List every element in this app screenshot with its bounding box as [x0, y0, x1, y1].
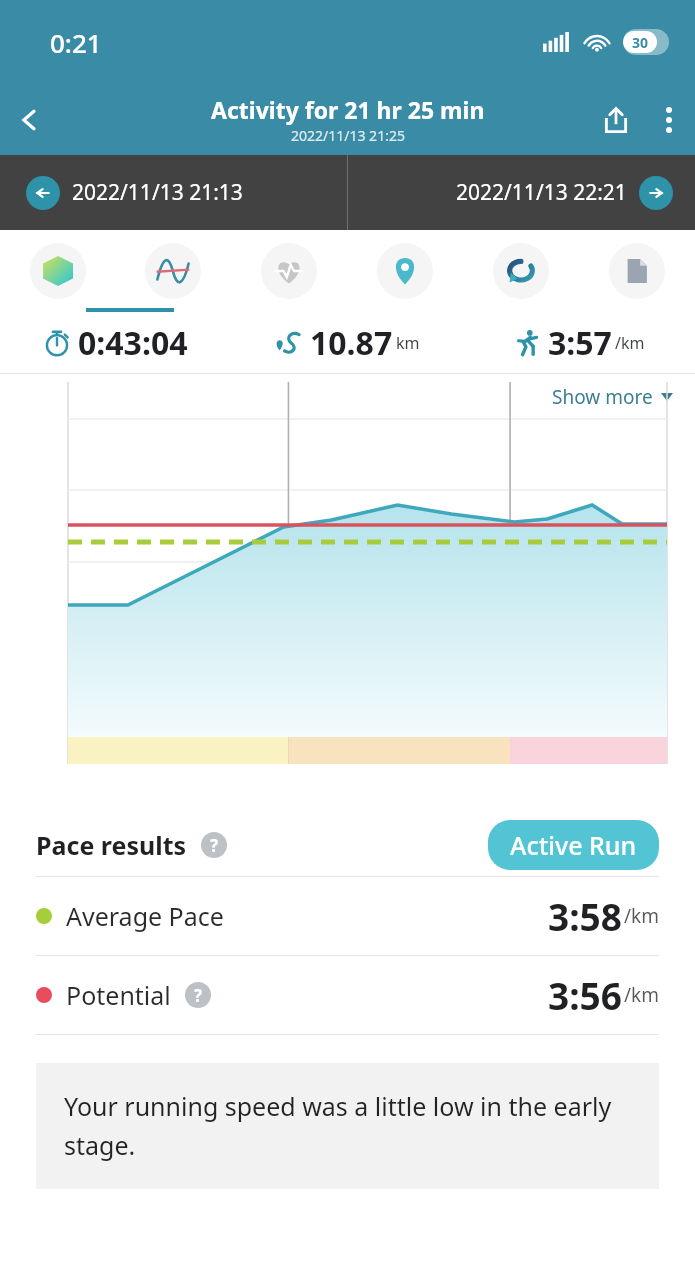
- button[interactable]: 3:57: [463, 312, 695, 374]
- staticText: 3:58: [548, 891, 622, 941]
- button[interactable]: 2022/11/13 22:21: [348, 155, 695, 230]
- button[interactable]: 0:43:04: [0, 312, 231, 374]
- staticText: /km: [615, 332, 645, 354]
- button[interactable]: Summary: [0, 230, 115, 312]
- other: Next: [639, 176, 673, 210]
- other: Previous: [26, 176, 60, 210]
- button[interactable]: More options: [643, 94, 695, 146]
- staticText: Show more: [552, 384, 653, 410]
- button[interactable]: Laps: [463, 230, 579, 312]
- staticText: /km: [624, 903, 659, 929]
- staticText: Average Pace: [66, 899, 224, 933]
- button[interactable]: Heart rate: [231, 230, 347, 312]
- staticText: km: [396, 332, 420, 354]
- button[interactable]: Show more: [530, 374, 695, 420]
- button[interactable]: Details: [579, 230, 695, 312]
- staticText: ?: [194, 984, 203, 1007]
- staticText: Pace results: [36, 828, 187, 862]
- staticText: 0:43:04: [78, 321, 188, 365]
- staticText: 10.87: [310, 321, 393, 365]
- button[interactable]: Potential: [0, 956, 695, 1034]
- staticText: 2022/11/13 21:13: [72, 178, 243, 207]
- staticText: /km: [624, 982, 659, 1008]
- button[interactable]: 10.87: [231, 312, 463, 374]
- button[interactable]: Average Pace: [0, 877, 695, 955]
- staticText: 3:56: [548, 970, 622, 1020]
- staticText: ?: [210, 834, 219, 857]
- staticText: 0:21: [50, 25, 102, 60]
- button[interactable]: Back: [0, 90, 60, 150]
- staticText: Activity for 21 hr 25 min: [211, 94, 485, 125]
- button[interactable]: Share: [589, 93, 643, 147]
- button[interactable]: Help: [201, 832, 227, 858]
- button[interactable]: Route: [347, 230, 463, 312]
- staticText: Potential: [66, 978, 171, 1012]
- staticText: 3:57: [548, 321, 612, 365]
- button[interactable]: Active Run: [488, 820, 659, 870]
- staticText: Active Run: [510, 828, 637, 862]
- button[interactable]: Pace: [115, 230, 231, 312]
- staticText: 2022/11/13 21:25: [291, 126, 405, 145]
- staticText: Your running speed was a little low in t…: [64, 1089, 631, 1163]
- staticText: 2022/11/13 22:21: [456, 178, 627, 207]
- staticText: 30: [632, 33, 649, 52]
- button[interactable]: Previous: [0, 155, 347, 230]
- button[interactable]: Help: [185, 982, 211, 1008]
